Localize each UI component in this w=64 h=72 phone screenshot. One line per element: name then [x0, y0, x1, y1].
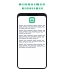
button[interactable]: App preview on phone [17, 13, 47, 69]
button[interactable]: Automated scheduling headline [22, 7, 43, 10]
button[interactable]: App icon [29, 17, 35, 23]
button[interactable]: Automated scheduling headline [19, 3, 45, 6]
